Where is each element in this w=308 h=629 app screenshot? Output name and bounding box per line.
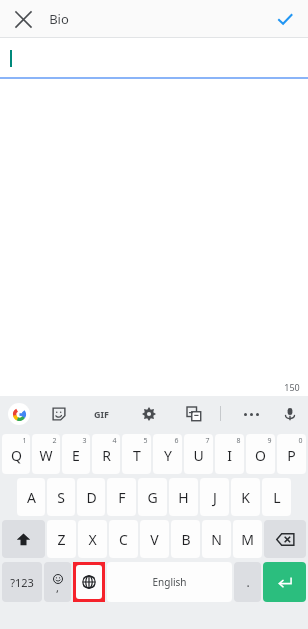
button[interactable]: Save bbox=[268, 2, 302, 36]
staticText: 3 bbox=[82, 436, 87, 446]
button[interactable]: W bbox=[32, 434, 60, 474]
staticText: R bbox=[102, 446, 111, 465]
button[interactable]: Q bbox=[2, 434, 30, 474]
button[interactable]: N bbox=[202, 520, 231, 558]
staticText: GIF bbox=[94, 408, 109, 420]
staticText: T bbox=[133, 446, 141, 465]
staticText: S bbox=[57, 488, 65, 507]
button[interactable]: ?123 bbox=[2, 562, 42, 602]
button[interactable]: Close bbox=[6, 2, 40, 36]
staticText: 5 bbox=[143, 436, 148, 446]
staticText: , bbox=[56, 580, 59, 595]
staticText: ?123 bbox=[10, 575, 34, 590]
staticText: 8 bbox=[236, 436, 241, 446]
staticText: W bbox=[39, 446, 53, 465]
button[interactable]: Enter bbox=[263, 562, 306, 602]
button[interactable]: I bbox=[215, 434, 244, 474]
staticText: 1 bbox=[22, 436, 27, 446]
button[interactable]: GIF bbox=[88, 401, 114, 427]
button[interactable]: Backspace bbox=[264, 520, 306, 558]
staticText: . bbox=[246, 574, 250, 590]
staticText: N bbox=[211, 530, 222, 549]
button[interactable]: Y bbox=[153, 434, 182, 474]
staticText: 0 bbox=[298, 436, 303, 446]
button[interactable]: O bbox=[246, 434, 275, 474]
staticText: Bio bbox=[49, 10, 69, 28]
button[interactable]: D bbox=[77, 478, 105, 516]
button[interactable]: Change keyboard language bbox=[76, 565, 102, 599]
button[interactable]: M bbox=[233, 520, 262, 558]
staticText: Z bbox=[57, 530, 66, 549]
button[interactable] bbox=[0, 38, 308, 79]
staticText: X bbox=[88, 530, 97, 549]
staticText: J bbox=[213, 488, 217, 507]
staticText: 7 bbox=[205, 436, 210, 446]
button[interactable]: R bbox=[92, 434, 120, 474]
button[interactable]: V bbox=[140, 520, 169, 558]
staticText: L bbox=[273, 488, 281, 507]
button[interactable]: H bbox=[169, 478, 198, 516]
staticText: A bbox=[27, 488, 36, 507]
staticText: Q bbox=[11, 446, 22, 465]
staticText: P bbox=[287, 446, 296, 465]
staticText: 4 bbox=[112, 436, 117, 446]
button[interactable]: Voice input bbox=[278, 402, 302, 426]
button[interactable]: G bbox=[138, 478, 167, 516]
staticText: K bbox=[241, 488, 250, 507]
staticText: H bbox=[178, 488, 189, 507]
button[interactable]: S bbox=[47, 478, 75, 516]
staticText: C bbox=[119, 530, 128, 549]
staticText: M bbox=[241, 530, 254, 549]
staticText: F bbox=[118, 488, 126, 507]
staticText: U bbox=[193, 446, 204, 465]
staticText: I bbox=[227, 446, 232, 465]
button[interactable]: Translate bbox=[182, 402, 206, 426]
button[interactable]: English bbox=[107, 562, 232, 602]
button[interactable]: . bbox=[234, 562, 261, 602]
staticText: 150 bbox=[284, 381, 300, 393]
button[interactable]: C bbox=[109, 520, 138, 558]
button[interactable]: L bbox=[262, 478, 291, 516]
staticText: V bbox=[150, 530, 159, 549]
staticText: English bbox=[152, 575, 187, 589]
button[interactable]: Shift bbox=[2, 520, 45, 558]
button[interactable]: Emoji and comma bbox=[44, 562, 71, 602]
button[interactable]: Z bbox=[47, 520, 76, 558]
button[interactable]: U bbox=[184, 434, 213, 474]
button[interactable]: J bbox=[200, 478, 229, 516]
staticText: B bbox=[181, 530, 191, 549]
staticText: Y bbox=[164, 446, 172, 465]
staticText: G bbox=[147, 488, 158, 507]
staticText: 9 bbox=[267, 436, 272, 446]
button[interactable]: E bbox=[62, 434, 90, 474]
button[interactable]: More options bbox=[238, 401, 264, 427]
staticText: 6 bbox=[174, 436, 179, 446]
button[interactable]: Stickers bbox=[47, 402, 71, 426]
button[interactable]: K bbox=[231, 478, 260, 516]
button[interactable]: F bbox=[107, 478, 136, 516]
button[interactable]: Google search bbox=[8, 403, 30, 425]
button[interactable]: T bbox=[122, 434, 151, 474]
button[interactable]: B bbox=[171, 520, 200, 558]
button[interactable]: P bbox=[277, 434, 306, 474]
staticText: D bbox=[86, 488, 97, 507]
button[interactable]: X bbox=[78, 520, 107, 558]
button[interactable]: Settings bbox=[137, 402, 161, 426]
staticText: E bbox=[72, 446, 80, 465]
staticText: O bbox=[255, 446, 266, 465]
staticText: 2 bbox=[52, 436, 57, 446]
button[interactable]: A bbox=[17, 478, 45, 516]
